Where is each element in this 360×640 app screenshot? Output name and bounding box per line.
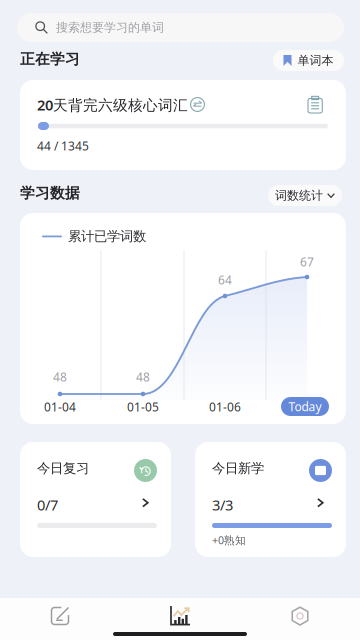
staticText: 3/3	[212, 495, 233, 514]
button[interactable]: 今日新学	[195, 442, 346, 557]
staticText: 词数统计	[275, 188, 323, 203]
button[interactable]: 笔记	[0, 598, 120, 634]
button[interactable]: 词数统计	[268, 185, 342, 206]
staticText: 01-05	[127, 399, 159, 415]
button[interactable]: 词表	[308, 96, 322, 113]
staticText: 搜索想要学习的单词	[56, 20, 164, 35]
staticText: 48	[53, 369, 67, 385]
staticText: 今日新学	[212, 460, 264, 476]
staticText: 学习数据	[20, 184, 80, 202]
staticText: +0熟知	[212, 533, 246, 547]
button[interactable]: 今日复习	[20, 442, 171, 557]
staticText: 单词本	[297, 53, 333, 68]
staticText: 44 / 1345	[37, 138, 89, 154]
staticText: 累计已学词数	[68, 228, 146, 244]
staticText: 0/7	[37, 495, 58, 514]
staticText: 20天背完六级核心词汇	[37, 95, 188, 114]
staticText: 48	[136, 369, 150, 385]
staticText: 67	[300, 254, 314, 270]
staticText: 01-06	[209, 399, 241, 415]
button[interactable]: 搜索想要学习的单词	[17, 13, 344, 42]
button[interactable]: 学习数据	[120, 598, 240, 634]
button[interactable]: 设置	[240, 598, 360, 634]
staticText: 01-04	[44, 399, 76, 415]
button[interactable]: 单词本	[273, 50, 344, 71]
staticText: 正在学习	[20, 50, 80, 68]
button[interactable]: Today	[281, 397, 329, 416]
staticText: Today	[288, 398, 321, 414]
staticText: 64	[218, 272, 232, 288]
staticText: 今日复习	[37, 460, 89, 476]
